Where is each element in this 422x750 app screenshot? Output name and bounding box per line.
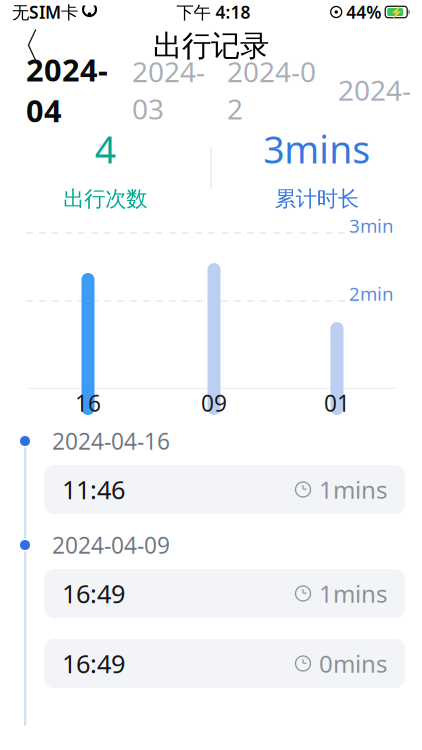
staticText: 01 [324,388,350,418]
staticText: 无SIM卡 [12,0,78,23]
staticText: ⚡ [390,6,403,18]
staticText: 16 [75,388,101,418]
staticText: 2024- [338,71,411,109]
staticText: 2024-03 [132,53,205,127]
staticText: 16:49 [62,577,125,610]
staticText: 3mins [263,124,370,174]
staticText: 44% [346,0,381,23]
staticText: 1mins [319,578,387,609]
staticText: 4 [95,124,116,174]
staticText: 2min [349,281,394,306]
button[interactable]: 16:49 [44,569,405,618]
button[interactable]: 2024-04 [26,49,108,131]
staticText: 出行记录 [153,28,269,64]
staticText: 16:49 [62,647,125,680]
staticText: 出行次数 [63,186,147,212]
staticText: 09 [201,388,227,418]
button[interactable]: Back [0,27,46,65]
staticText: 2024-02 [227,53,316,127]
staticText: 下午 4:18 [177,0,251,23]
staticText: 2024-04 [26,49,108,131]
button[interactable]: 2024-02 [227,53,316,127]
staticText: 2024-04-09 [52,530,170,560]
staticText: 3min [349,213,394,238]
staticText: 〈 [5,24,41,68]
button[interactable]: 2024- [338,71,411,109]
button[interactable]: 2024-03 [132,53,205,127]
staticText: 累计时长 [275,186,359,212]
staticText: 11:46 [62,473,125,506]
staticText: 0mins [319,648,387,679]
button[interactable]: 11:46 [44,465,405,514]
button[interactable]: 16:49 [44,639,405,688]
staticText: 1mins [319,474,387,505]
staticText: 2024-04-16 [52,426,170,456]
